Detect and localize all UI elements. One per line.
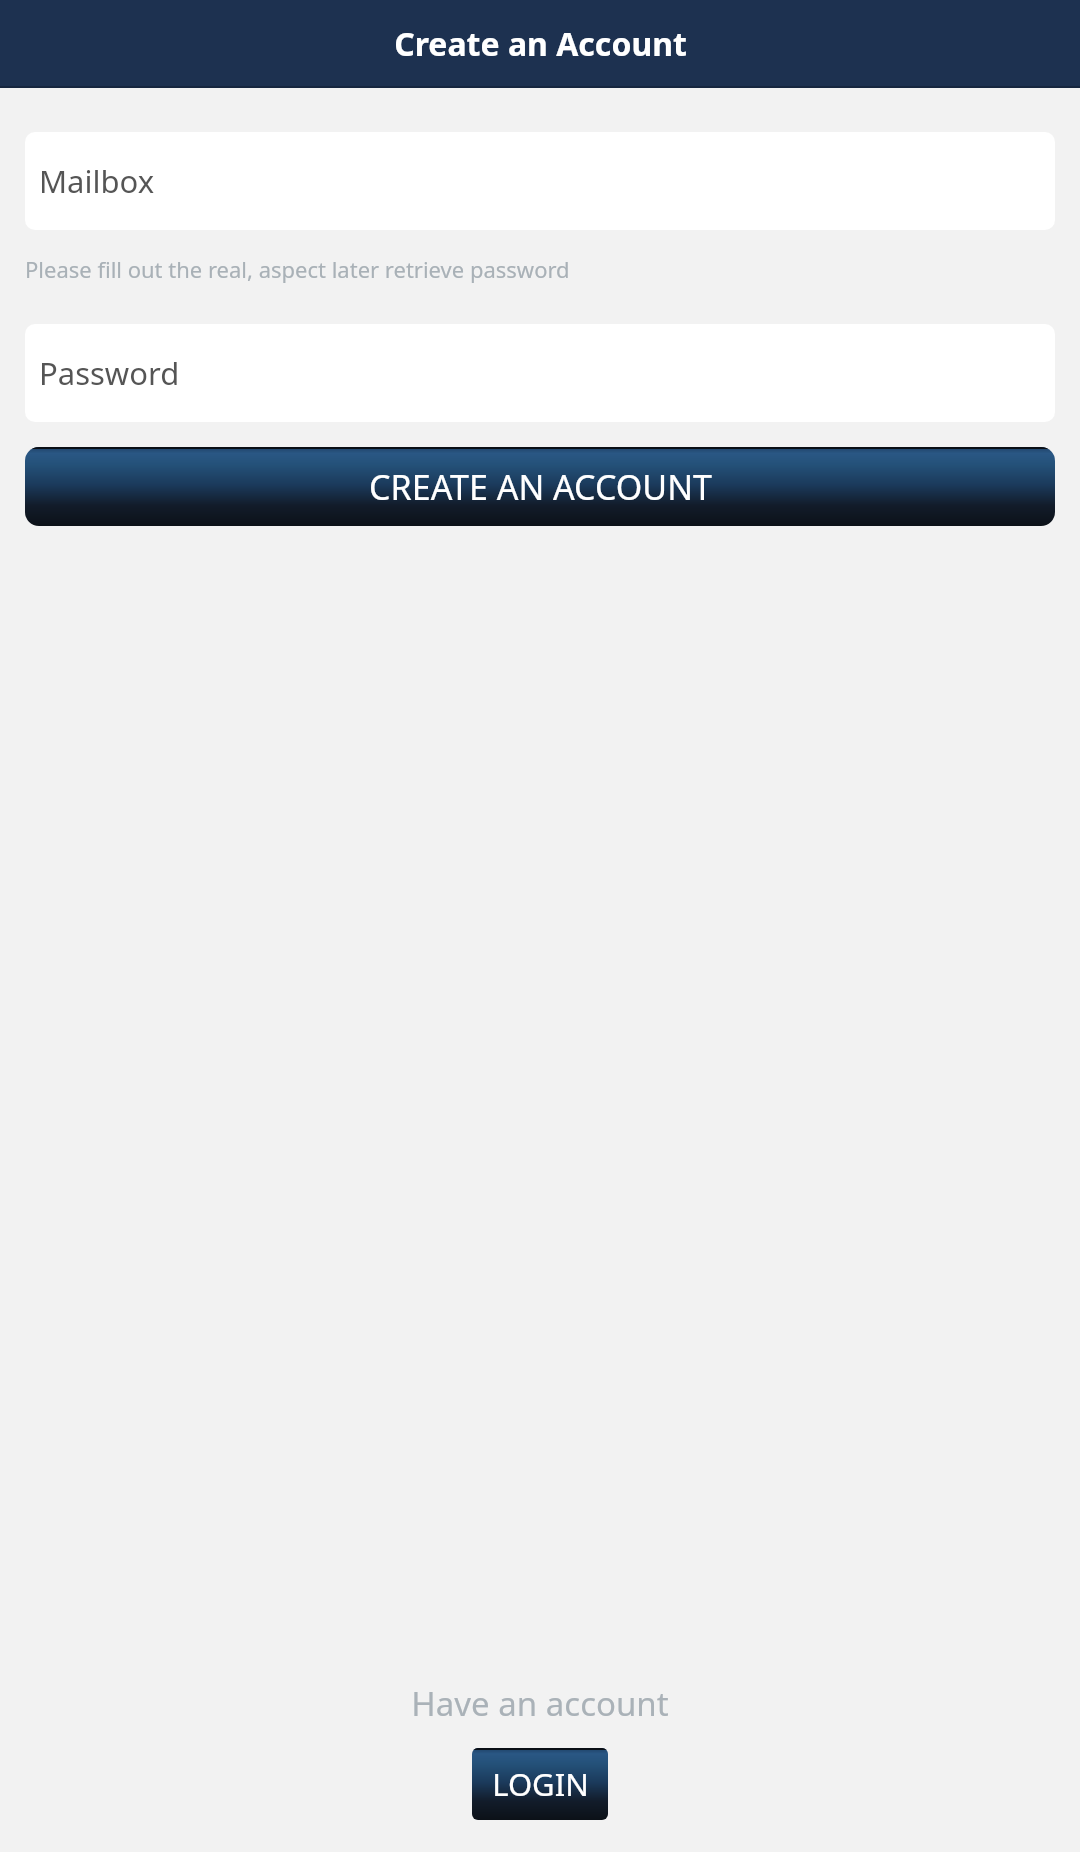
button[interactable]: CREATE AN ACCOUNT: [25, 447, 1055, 526]
button[interactable]: Password: [25, 324, 1055, 422]
button[interactable]: Mailbox: [25, 132, 1055, 230]
button[interactable]: LOGIN: [472, 1748, 608, 1820]
staticText: Password: [39, 352, 180, 394]
staticText: LOGIN: [492, 1763, 589, 1805]
staticText: CREATE AN ACCOUNT: [369, 464, 712, 510]
staticText: Mailbox: [39, 160, 155, 202]
staticText: Please fill out the real, aspect later r…: [25, 254, 1055, 284]
staticText: Have an account: [411, 1681, 669, 1726]
staticText: Create an Account: [394, 22, 687, 66]
